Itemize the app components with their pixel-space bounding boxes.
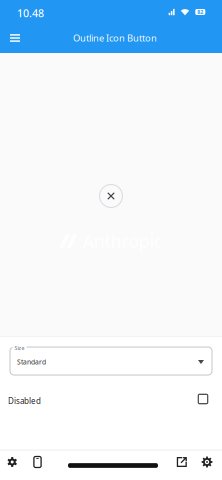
button[interactable]: Menu bbox=[2, 25, 28, 51]
button[interactable]: Preferences bbox=[196, 451, 218, 473]
button[interactable]: Size: Standard bbox=[10, 347, 212, 375]
button[interactable]: Device preview bbox=[26, 451, 48, 473]
button[interactable]: Close bbox=[94, 179, 128, 213]
staticText: 82 bbox=[197, 8, 203, 16]
button[interactable]: Disabled bbox=[193, 389, 213, 409]
staticText: Disabled bbox=[8, 396, 41, 406]
staticText: Standard bbox=[17, 358, 46, 366]
staticText: Size bbox=[14, 344, 24, 352]
staticText: Outline Icon Button bbox=[73, 32, 157, 44]
staticText: 10.48 bbox=[17, 6, 44, 20]
button[interactable]: Settings bbox=[1, 451, 23, 473]
button[interactable]: Open in new window bbox=[171, 451, 193, 473]
